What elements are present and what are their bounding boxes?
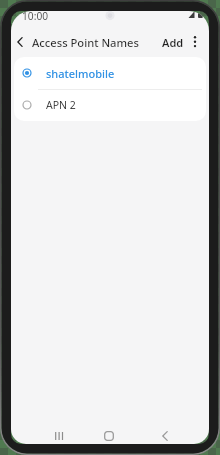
button[interactable]: shatelmobile: [14, 57, 206, 89]
staticText: 10:00: [22, 11, 49, 23]
staticText: APN 2: [46, 98, 76, 112]
staticText: Access Point Names: [32, 35, 139, 50]
button[interactable]: [12, 31, 28, 53]
button[interactable]: [189, 31, 201, 53]
staticText: shatelmobile: [46, 66, 115, 81]
button[interactable]: [47, 425, 71, 444]
button[interactable]: [153, 425, 177, 444]
button[interactable]: [97, 425, 121, 444]
button[interactable]: Add: [157, 31, 189, 53]
button[interactable]: APN 2: [14, 90, 206, 121]
staticText: Add: [162, 35, 184, 50]
